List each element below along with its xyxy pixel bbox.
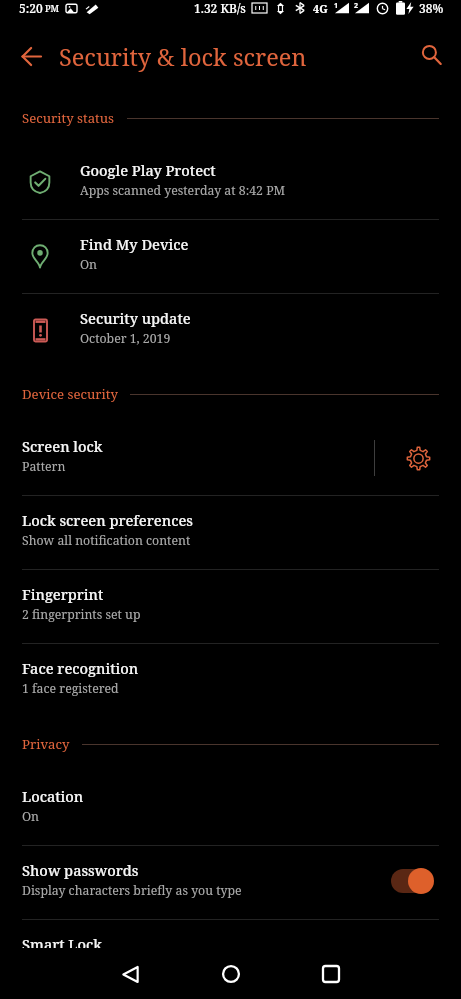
button[interactable]: Lock screen preferences xyxy=(0,495,461,569)
staticText: 1 xyxy=(334,1,339,11)
button[interactable]: Home xyxy=(208,951,254,997)
staticText: Face recognition xyxy=(22,658,139,678)
button[interactable]: Fingerprint xyxy=(0,569,461,643)
staticText: 38% xyxy=(419,0,444,16)
staticText: 5:20 xyxy=(19,0,43,16)
button[interactable]: Google Play Protect xyxy=(0,145,461,219)
staticText: Security & lock screen xyxy=(59,41,307,73)
staticText: 2 xyxy=(354,1,359,11)
button[interactable]: Back xyxy=(11,36,51,76)
button[interactable]: Recent apps xyxy=(308,951,354,997)
staticText: Find My Device xyxy=(80,234,189,254)
staticText: 1.32 KB/s xyxy=(194,0,246,16)
staticText: Location xyxy=(22,786,84,806)
staticText: Apps scanned yesterday at 8:42 PM xyxy=(80,182,286,199)
staticText: 4G xyxy=(313,1,328,16)
staticText: October 1, 2019 xyxy=(80,330,171,347)
button[interactable]: Security update xyxy=(0,293,461,367)
staticText: Privacy xyxy=(22,735,70,753)
button[interactable]: Screen lock settings xyxy=(375,421,461,495)
staticText: On xyxy=(80,256,98,273)
staticText: Fingerprint xyxy=(22,584,104,604)
staticText: On xyxy=(22,808,40,825)
button[interactable]: Find My Device xyxy=(0,219,461,293)
staticText: Lock screen preferences xyxy=(22,510,193,530)
staticText: PM xyxy=(45,2,59,14)
staticText: Google Play Protect xyxy=(80,160,216,180)
staticText: Security status xyxy=(22,109,115,127)
button[interactable]: Show passwords xyxy=(0,845,461,919)
button[interactable]: Location xyxy=(0,771,461,845)
staticText: Show passwords xyxy=(22,860,139,880)
staticText: 2 fingerprints set up xyxy=(22,606,141,623)
staticText: Show all notification content xyxy=(22,532,191,549)
staticText: Security update xyxy=(80,308,191,328)
button[interactable]: Smart Lock xyxy=(0,919,461,993)
staticText: Device security xyxy=(22,385,118,403)
staticText: 1 face registered xyxy=(22,680,119,697)
staticText: Smart Lock xyxy=(22,934,102,954)
staticText: Pattern xyxy=(22,458,66,475)
button[interactable]: Face recognition xyxy=(0,643,461,717)
staticText: Display characters briefly as you type xyxy=(22,882,242,899)
button[interactable]: Search xyxy=(411,34,451,74)
button[interactable]: Screen lock xyxy=(0,421,374,495)
staticText: Screen lock xyxy=(22,436,103,456)
button[interactable]: Back xyxy=(107,951,153,997)
